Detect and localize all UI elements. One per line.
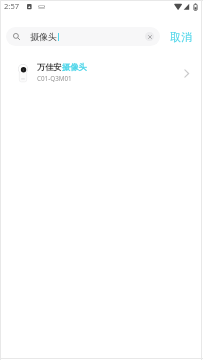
staticText: 2:57 bbox=[4, 1, 20, 11]
button[interactable]: Clear text bbox=[145, 32, 154, 41]
staticText: 取消 bbox=[170, 30, 192, 44]
button[interactable]: 摄像头 bbox=[6, 27, 160, 46]
button[interactable]: 万佳安摄像头 bbox=[0, 52, 203, 88]
staticText: 万佳安摄像头 bbox=[37, 62, 87, 72]
staticText: C01-Q3M01 bbox=[37, 74, 72, 83]
staticText: 摄像头 bbox=[30, 31, 57, 42]
button[interactable]: 取消 bbox=[164, 27, 198, 46]
other: Open device bbox=[184, 69, 190, 78]
